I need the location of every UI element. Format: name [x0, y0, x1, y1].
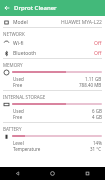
button[interactable]: Model [3, 17, 102, 27]
staticText: 14% [93, 140, 102, 146]
staticText: Temperature [13, 146, 41, 152]
staticText: 1.11 GB [85, 76, 102, 82]
staticText: Used [13, 76, 24, 82]
staticText: Free [13, 114, 23, 120]
staticText: Model [13, 19, 28, 26]
staticText: Level [13, 140, 24, 146]
staticText: Free [13, 82, 23, 88]
staticText: NETWORK [3, 31, 25, 37]
button[interactable]: Home [35, 171, 70, 176]
button[interactable]: Back [0, 1, 14, 15]
staticText: MEMORY [3, 62, 23, 68]
staticText: 31 °C [90, 146, 102, 152]
staticText: BATTERY [3, 126, 22, 132]
button[interactable]: Back [0, 171, 35, 176]
staticText: 6 GB [92, 108, 102, 114]
staticText: Bluetooth [13, 50, 37, 57]
staticText: Wi-fi [13, 40, 24, 47]
staticText: 788.40 MB [79, 82, 102, 88]
button[interactable]: Bluetooth [3, 48, 102, 58]
staticText: Off [94, 40, 102, 47]
staticText: Off [94, 50, 102, 57]
staticText: INTERNAL STORAGE [3, 94, 46, 100]
staticText: Used [13, 108, 24, 114]
button[interactable]: Recents [70, 171, 105, 176]
staticText: 4 GB [92, 114, 102, 120]
button[interactable]: Wi-fi [3, 38, 102, 48]
staticText: Drprot Cleaner [14, 4, 57, 12]
staticText: HUAWEI MYA-L22 [61, 19, 102, 26]
